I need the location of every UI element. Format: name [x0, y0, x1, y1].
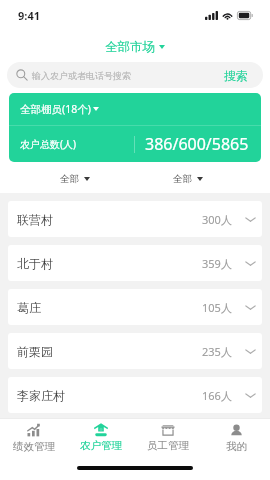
staticText: 绩效管理 — [13, 440, 55, 453]
staticText: 386/600/5865 — [145, 133, 249, 155]
staticText: 李家庄村 — [17, 388, 65, 403]
staticText: 全部棚员(18个) — [20, 102, 91, 116]
button[interactable]: 前栗园 — [8, 333, 262, 369]
button[interactable]: 李家庄村 — [8, 377, 262, 413]
button[interactable]: Farmer management — [67, 419, 134, 452]
staticText: 全部 — [60, 173, 79, 185]
staticText: 输入农户或者电话号搜索 — [32, 70, 131, 81]
button[interactable]: 输入农户或者电话号搜索 — [7, 62, 263, 88]
button[interactable]: 全部 — [170, 171, 206, 187]
staticText: 300人 — [202, 212, 232, 227]
staticText: 联营村 — [17, 212, 53, 227]
staticText: 我的 — [226, 440, 247, 453]
button[interactable]: Profile — [202, 419, 270, 453]
staticText: 农户管理 — [80, 439, 122, 452]
button[interactable]: Performance management — [0, 419, 67, 453]
button[interactable]: 全部棚员(18个) — [9, 93, 261, 125]
button[interactable]: 葛庄 — [8, 289, 262, 325]
button[interactable]: 北于村 — [8, 245, 262, 281]
staticText: 农户总数(人) — [20, 137, 76, 151]
staticText: 359人 — [202, 256, 232, 271]
staticText: 166人 — [202, 388, 232, 403]
staticText: 北于村 — [17, 256, 53, 271]
staticText: 235人 — [202, 344, 232, 359]
staticText: 全部 — [173, 173, 192, 185]
staticText: 9:41 — [18, 8, 40, 23]
staticText: 员工管理 — [147, 439, 189, 452]
button[interactable]: Staff management — [134, 419, 202, 452]
staticText: 105人 — [202, 300, 232, 315]
button[interactable]: 搜索 — [224, 68, 248, 83]
button[interactable]: 联营村 — [8, 201, 262, 237]
staticText: 前栗园 — [17, 344, 53, 359]
staticText: 全部市场 — [105, 39, 155, 55]
staticText: 葛庄 — [17, 300, 41, 315]
button[interactable]: 全部 — [57, 171, 93, 187]
button[interactable]: 全部市场 — [99, 36, 171, 58]
